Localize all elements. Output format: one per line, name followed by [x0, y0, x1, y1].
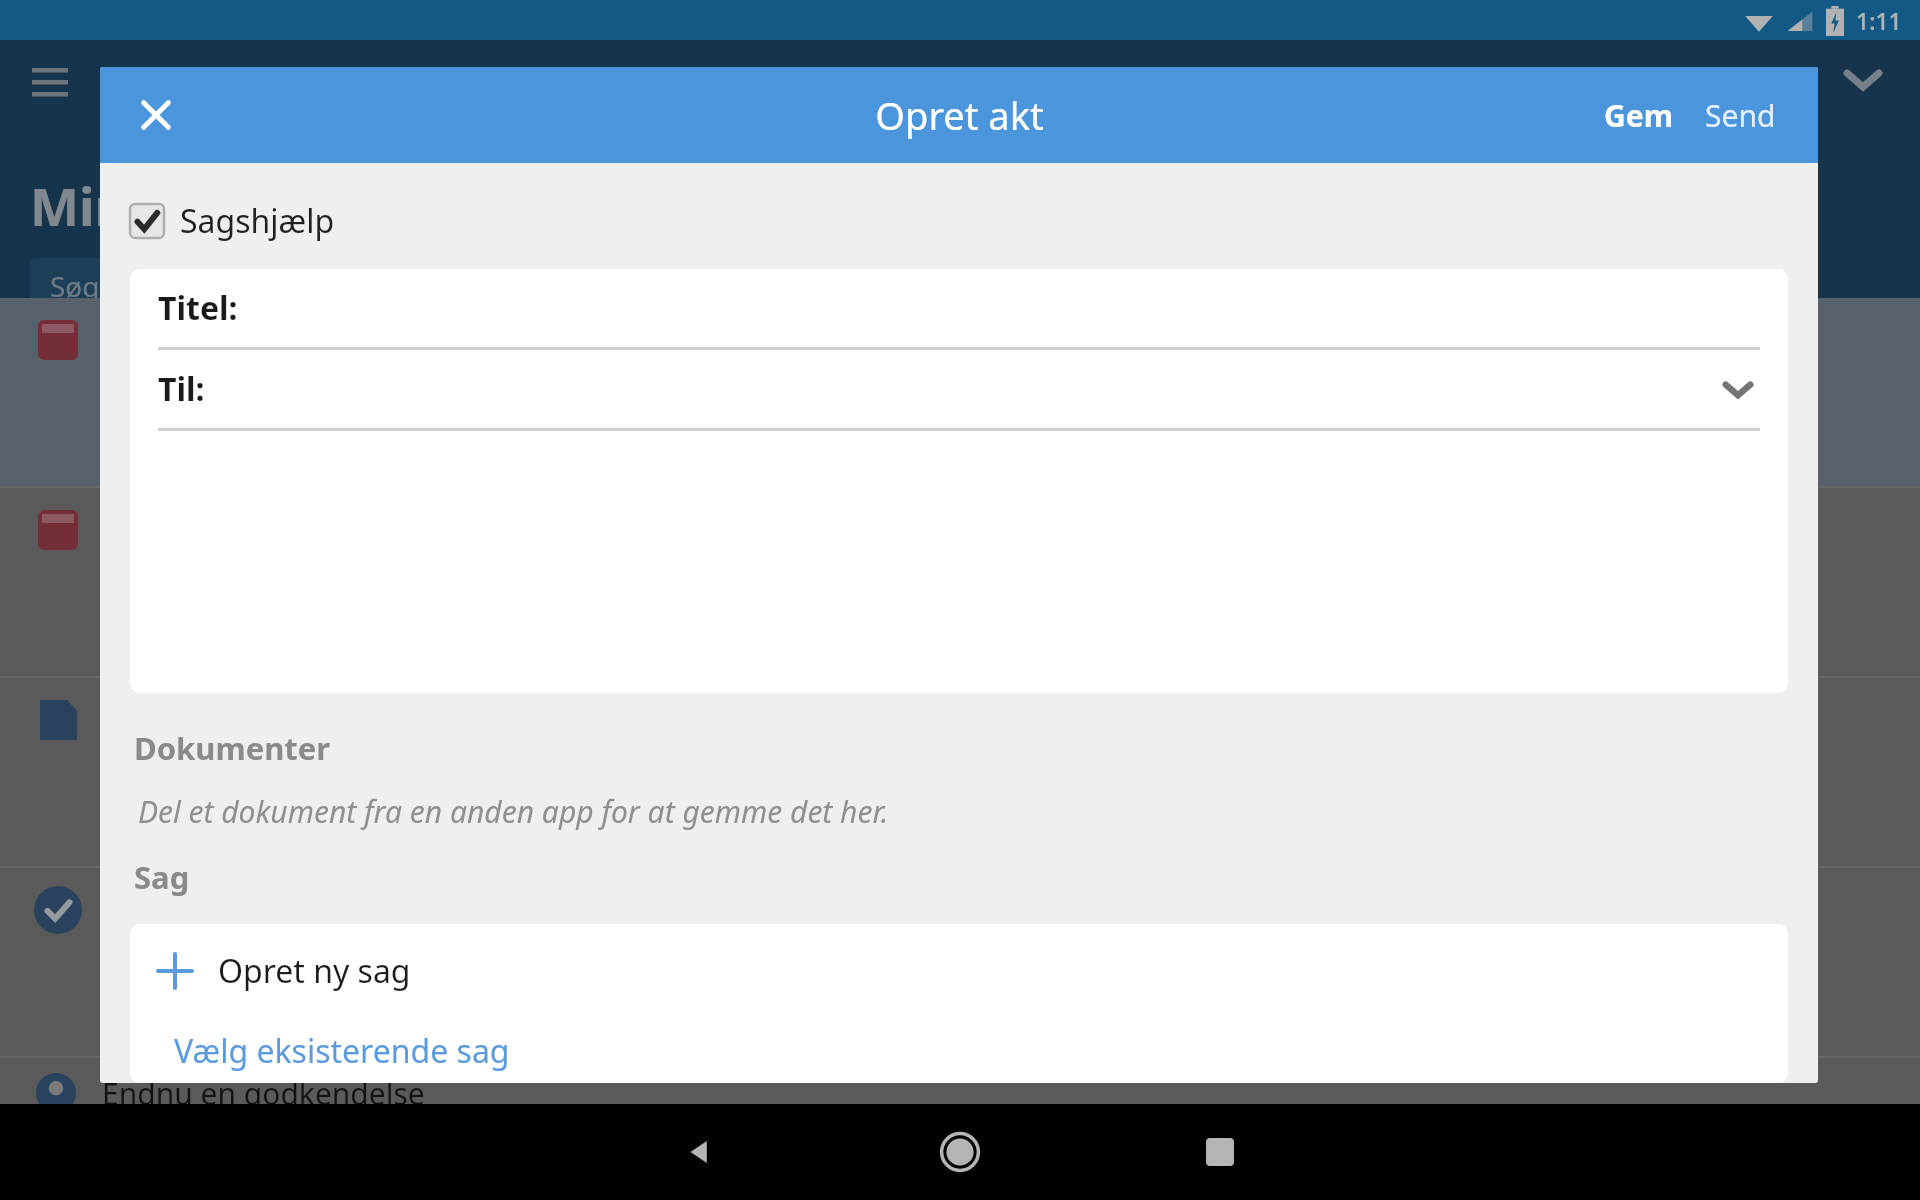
button[interactable]: Byggesag 2019: [0, 488, 1920, 678]
staticText: Dokumenter: [134, 727, 331, 769]
staticText: Opret ny sag: [218, 949, 411, 993]
button[interactable]: Send: [1693, 85, 1788, 146]
staticText: Del et dokument fra en anden app for at …: [138, 791, 889, 832]
staticText: Ansvarlig: Jens Jensen: [108, 615, 353, 648]
staticText: Frist: 12-04-2019: [108, 372, 311, 407]
staticText: Endnu en godkendelse: [102, 1073, 425, 1114]
button[interactable]: Expand: [1838, 54, 1888, 104]
staticText: Byggesag 2019: [108, 502, 338, 546]
button[interactable]: Lejekontrakt: [0, 298, 1920, 488]
staticText: Ansvarlig: Jens Jensen: [108, 995, 353, 1028]
staticText: 1:11: [1856, 5, 1902, 36]
button[interactable]: Menu: [28, 58, 72, 102]
staticText: Vælg eksisterende sag: [174, 1029, 510, 1073]
staticText: Ansvarlig: Jens Jensen: [108, 425, 353, 458]
button[interactable]: Samtykke: [0, 868, 1920, 1058]
staticText: Titel:: [158, 286, 238, 330]
staticText: Ansvarlig: Jens Jensen: [108, 805, 353, 838]
button[interactable]: Close: [128, 87, 184, 143]
button[interactable]: Gem: [1592, 85, 1685, 146]
button[interactable]: Til:: [158, 350, 1760, 428]
button[interactable]: Back: [652, 1104, 748, 1200]
staticText: Frist: 12-04-2019: [108, 942, 311, 977]
staticText: Modtaget: [1190, 346, 1310, 381]
staticText: Lejekontrakt: [108, 312, 297, 356]
staticText: Modtaget: [1190, 916, 1310, 951]
staticText: Samtykke: [108, 882, 254, 926]
button[interactable]: Titel:: [158, 269, 1760, 347]
staticText: Mine sager: [30, 170, 318, 241]
other: Open list: [1716, 367, 1760, 411]
staticText: Send: [1705, 95, 1776, 136]
staticText: Opret akt: [875, 89, 1044, 141]
button[interactable]: Opret ny sag: [130, 924, 1788, 1018]
staticText: Til:: [158, 367, 205, 411]
staticText: Gem: [1604, 95, 1673, 136]
staticText: Sagshjælp: [180, 199, 335, 243]
staticText: Frist: 12-04-2019: [108, 752, 311, 787]
button[interactable]: Vælg eksisterende sag: [130, 1018, 1788, 1083]
button[interactable]: Home: [912, 1104, 1008, 1200]
button[interactable]: Recent apps: [1172, 1104, 1268, 1200]
button[interactable]: Søg: [30, 258, 730, 314]
button[interactable]: Støjgener: [0, 678, 1920, 868]
staticText: Frist: 12-04-2019: [108, 562, 311, 597]
staticText: Sag: [134, 856, 190, 898]
button[interactable]: Sagshjælp: [130, 193, 351, 249]
staticText: Søg: [50, 267, 100, 305]
